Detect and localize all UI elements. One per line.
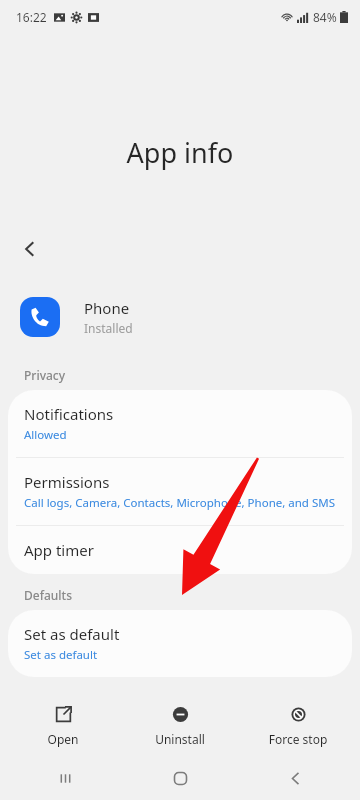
staticText: Set as default [24,647,98,663]
staticText: Set as default [24,624,120,644]
staticText: 16:22 [16,9,47,25]
button[interactable]: Phone [0,293,360,341]
button[interactable]: Force stop [243,701,353,751]
button[interactable]: Back [10,229,50,269]
staticText: Allowed [24,427,67,443]
button[interactable]: Open [8,701,118,751]
button[interactable]: App timer [8,526,352,574]
button[interactable]: Recents [15,756,115,800]
staticText: Privacy [24,367,66,383]
button[interactable]: Set as default [8,610,352,677]
button[interactable]: Back [245,756,345,800]
staticText: Open [8,731,118,747]
staticText: Call logs, Camera, Contacts, Microphone,… [24,495,335,511]
staticText: Uninstall [125,731,235,747]
staticText: 84% [313,9,337,25]
button[interactable]: Uninstall [125,701,235,751]
button[interactable]: Notifications [8,390,352,457]
staticText: App info [0,134,360,171]
staticText: Defaults [24,587,73,603]
button[interactable]: Permissions [8,458,352,525]
staticText: Force stop [243,731,353,747]
staticText: App timer [24,540,94,560]
staticText: Permissions [24,472,110,492]
button[interactable]: Home [130,756,230,800]
staticText: Phone [84,298,130,318]
staticText: Notifications [24,404,114,424]
staticText: Installed [84,320,133,336]
